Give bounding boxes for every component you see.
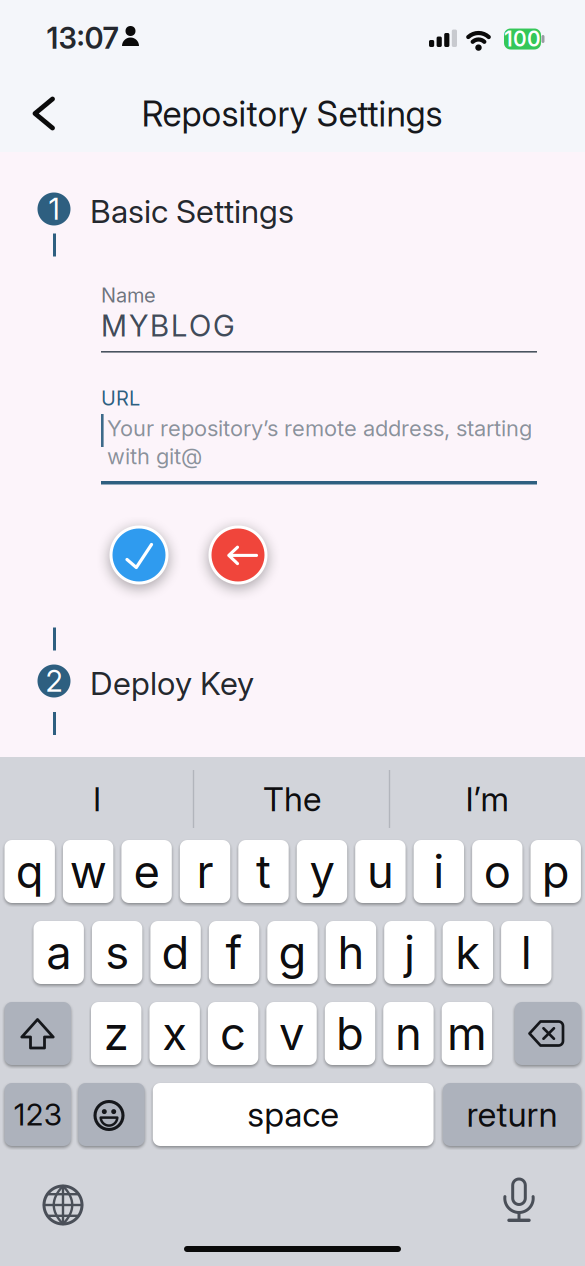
button[interactable]: g [267, 921, 318, 984]
staticText: y [309, 844, 334, 899]
button[interactable]: x [149, 1002, 200, 1065]
staticText: p [542, 844, 570, 899]
staticText: j [404, 925, 415, 980]
staticText: k [455, 925, 480, 980]
staticText: 2 [45, 663, 62, 699]
button[interactable]: h [326, 921, 376, 984]
button[interactable]: l [501, 921, 551, 984]
button[interactable]: o [472, 840, 522, 903]
staticText: e [134, 844, 160, 899]
button[interactable]: b [325, 1002, 375, 1065]
button[interactable]: I [7, 764, 187, 834]
button[interactable] [4, 1002, 71, 1065]
button[interactable]: z [91, 1002, 141, 1065]
button[interactable] [39, 1181, 87, 1229]
staticText: r [197, 844, 214, 899]
staticText: b [336, 1006, 364, 1061]
staticText: h [337, 925, 364, 980]
button[interactable]: p [531, 840, 581, 903]
staticText: URL [101, 386, 140, 410]
staticText: o [484, 844, 511, 899]
staticText: I [93, 779, 101, 819]
button[interactable] [78, 1083, 145, 1146]
button[interactable] [109, 525, 168, 584]
button[interactable] [101, 384, 537, 484]
staticText: Your repository’s remote address, starti… [107, 415, 532, 442]
staticText: c [220, 1006, 246, 1061]
button[interactable]: The [202, 764, 382, 834]
staticText: a [46, 925, 71, 980]
staticText: space [247, 1094, 339, 1135]
staticText: m [447, 1006, 487, 1061]
button[interactable]: u [355, 840, 406, 903]
staticText: Basic Settings [90, 192, 294, 231]
staticText: 1 [48, 191, 59, 227]
staticText: l [521, 925, 532, 980]
button[interactable]: v [266, 1002, 317, 1065]
button[interactable] [208, 525, 267, 584]
button[interactable]: y [297, 840, 347, 903]
staticText: return [466, 1094, 557, 1135]
staticText: Name [101, 283, 156, 307]
button[interactable]: i [414, 840, 464, 903]
button[interactable]: w [63, 840, 113, 903]
staticText: g [278, 925, 306, 980]
button[interactable]: j [384, 921, 435, 984]
staticText: f [226, 925, 243, 980]
button[interactable] [515, 1002, 581, 1065]
staticText: v [279, 1006, 304, 1061]
staticText: t [256, 844, 271, 899]
staticText: with git@ [107, 443, 202, 470]
button[interactable]: s [92, 921, 142, 984]
button[interactable]: f [209, 921, 259, 984]
button[interactable]: t [238, 840, 289, 903]
staticText: w [70, 844, 107, 899]
button[interactable]: r [180, 840, 230, 903]
button[interactable]: d [150, 921, 201, 984]
staticText: Repository Settings [141, 93, 442, 135]
button[interactable] [15, 85, 71, 141]
button[interactable]: 123 [4, 1083, 71, 1146]
staticText: u [367, 844, 394, 899]
button[interactable]: e [121, 840, 172, 903]
staticText: d [162, 925, 190, 980]
button[interactable]: k [443, 921, 493, 984]
button[interactable]: q [4, 840, 55, 903]
button[interactable]: return [443, 1083, 581, 1146]
button[interactable]: m [442, 1002, 492, 1065]
button[interactable] [495, 1175, 547, 1227]
staticText: n [395, 1006, 422, 1061]
staticText: s [105, 925, 129, 980]
staticText: 13:07 [46, 20, 118, 56]
staticText: z [104, 1006, 129, 1061]
button[interactable]: space [153, 1083, 434, 1146]
staticText: M Y B L O G [101, 308, 235, 343]
staticText: i [433, 844, 444, 899]
staticText: Deploy Key [90, 664, 254, 703]
button[interactable] [101, 279, 537, 354]
staticText: The [263, 779, 321, 819]
staticText: q [16, 844, 44, 899]
button[interactable]: a [33, 921, 84, 984]
button[interactable]: I’m [397, 764, 577, 834]
button[interactable]: n [383, 1002, 434, 1065]
staticText: 100 [504, 26, 541, 51]
button[interactable]: c [208, 1002, 258, 1065]
staticText: 123 [14, 1096, 62, 1133]
staticText: x [162, 1006, 187, 1061]
staticText: I’m [465, 779, 508, 819]
